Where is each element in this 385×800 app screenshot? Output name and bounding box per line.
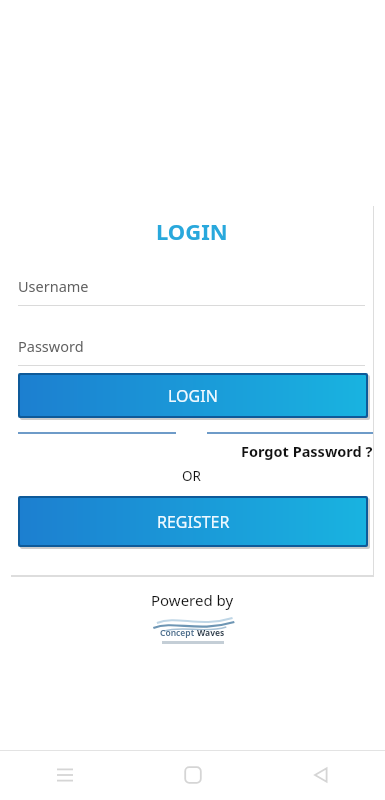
button[interactable]: Username [18, 266, 365, 306]
staticText: Forgot Password ? [241, 441, 373, 461]
staticText: Waves [197, 627, 225, 639]
staticText: Password [18, 336, 84, 356]
button[interactable]: Back [257, 750, 385, 800]
button[interactable]: Home [129, 750, 257, 800]
staticText: Username [18, 276, 89, 296]
staticText: Powered by [151, 590, 234, 610]
button[interactable]: Concept Waves logo [148, 614, 237, 644]
button[interactable]: Recents [0, 750, 129, 800]
button[interactable]: Password [18, 326, 365, 366]
staticText: Concept [160, 627, 195, 639]
staticText: REGISTER [157, 511, 230, 533]
staticText: LOGIN [168, 385, 218, 407]
button[interactable]: Forgot Password ? [193, 438, 373, 464]
button[interactable]: LOGIN [20, 375, 366, 416]
button[interactable]: REGISTER [20, 498, 366, 545]
staticText: LOGIN [156, 216, 228, 246]
staticText: OR [182, 467, 201, 485]
